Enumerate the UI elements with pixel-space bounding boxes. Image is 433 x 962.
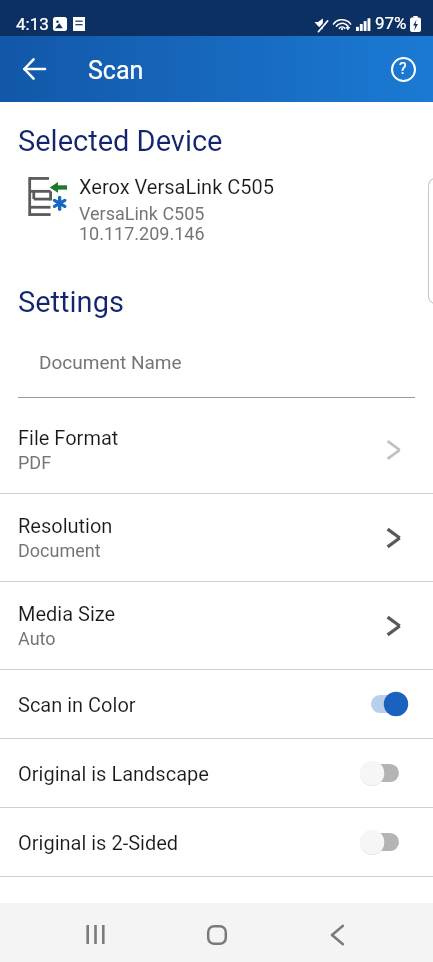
button[interactable]: Home bbox=[187, 910, 246, 959]
staticText: File Format bbox=[18, 426, 119, 449]
button[interactable]: Help bbox=[382, 48, 424, 90]
button[interactable]: Resolution bbox=[0, 494, 433, 581]
button[interactable]: Original is Landscape bbox=[0, 739, 433, 807]
button[interactable]: Scan in Color bbox=[0, 670, 433, 738]
staticText: ? bbox=[399, 59, 407, 78]
button[interactable]: Xerox VersaLink C505 bbox=[0, 173, 433, 243]
staticText: Auto bbox=[18, 628, 56, 649]
staticText: Scan bbox=[88, 56, 144, 85]
button[interactable]: File Format bbox=[0, 406, 433, 493]
staticText: PDF bbox=[18, 452, 52, 473]
staticText: Selected Device bbox=[18, 124, 223, 158]
button[interactable]: Recent apps bbox=[66, 910, 125, 959]
staticText: Settings bbox=[18, 285, 124, 319]
staticText: Resolution bbox=[18, 514, 113, 537]
staticText: 10.117.209.146 bbox=[79, 223, 205, 244]
staticText: Original is Landscape bbox=[18, 762, 359, 785]
staticText: Document bbox=[18, 540, 101, 561]
staticText: 4:13 bbox=[16, 14, 49, 34]
staticText: Original is 2-Sided bbox=[18, 831, 359, 854]
staticText: VersaLink C505 bbox=[79, 203, 205, 224]
staticText: Media Size bbox=[18, 602, 116, 625]
button[interactable]: Media Size bbox=[0, 582, 433, 669]
staticText: Scan in Color bbox=[18, 693, 359, 716]
staticText: Xerox VersaLink C505 bbox=[79, 175, 274, 198]
button[interactable]: Original is 2-Sided bbox=[0, 808, 433, 876]
button[interactable]: Back bbox=[12, 47, 56, 91]
staticText: 97% bbox=[375, 13, 407, 33]
staticText: Document Name bbox=[39, 351, 182, 373]
button[interactable]: Back bbox=[308, 910, 367, 959]
